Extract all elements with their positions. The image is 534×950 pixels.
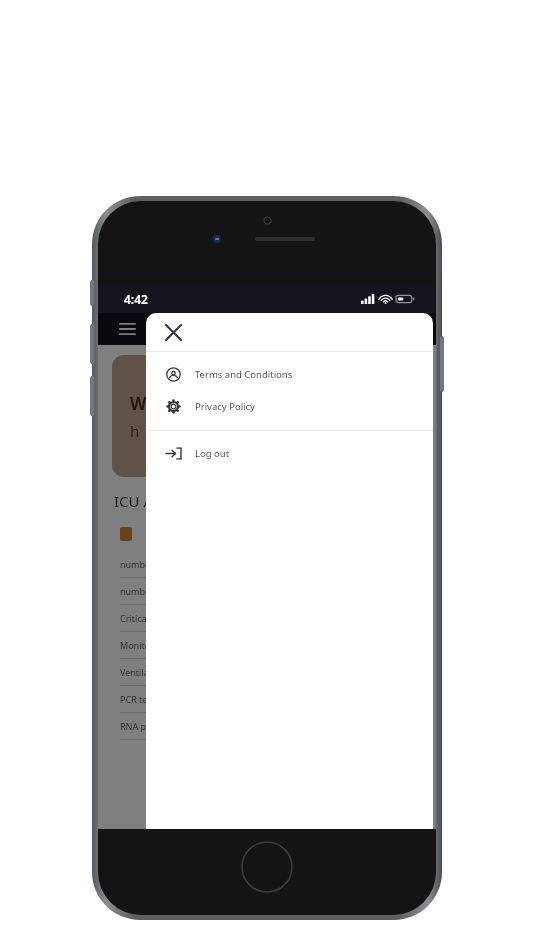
button[interactable]: Privacy Policy: [146, 394, 433, 418]
staticText: ICU Admissions: [114, 491, 224, 511]
button[interactable]: Terms and Conditions: [146, 362, 433, 386]
button[interactable]: number of beds: [120, 551, 414, 577]
button[interactable]: Ventilators: [120, 659, 414, 685]
button[interactable]: Open navigation menu: [116, 318, 138, 340]
button[interactable]: Log out: [146, 441, 433, 465]
button[interactable]: Close menu: [160, 319, 186, 345]
button[interactable]: Monitors: [120, 632, 414, 658]
button[interactable]: number of staff: [120, 578, 414, 604]
staticText: number of beds: [120, 558, 188, 570]
staticText: RNA panels: [120, 720, 169, 732]
button[interactable]: W: [112, 355, 422, 477]
staticText: h: [130, 421, 140, 441]
button[interactable]: PCR tests: [120, 686, 414, 712]
staticText: number of staff: [120, 585, 186, 597]
staticText: PCR tests: [120, 693, 160, 705]
staticText: Privacy Policy: [195, 400, 255, 413]
staticText: 4:42: [124, 291, 148, 307]
staticText: Terms and Conditions: [195, 368, 293, 381]
staticText: Log out: [195, 447, 230, 460]
staticText: W: [130, 392, 147, 415]
button[interactable]: Critical cases: [120, 605, 414, 631]
staticText: Ventilators: [120, 666, 166, 678]
staticText: Monitors: [120, 639, 159, 651]
staticText: Critical cases: [120, 612, 175, 624]
button[interactable]: RNA panels: [120, 713, 414, 739]
